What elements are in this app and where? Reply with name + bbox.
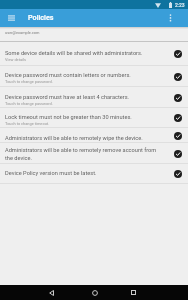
button[interactable]: Some device details will be shared with … bbox=[0, 42, 188, 66]
button[interactable]: Lock timeout must not be greater than 30… bbox=[0, 108, 188, 128]
button[interactable]: Administrators will be able to remotely … bbox=[0, 128, 188, 143]
staticText: Touch to change password. bbox=[5, 101, 53, 106]
staticText: Administrators will be able to remotely … bbox=[5, 135, 143, 142]
staticText: Administrators will be able to remotely … bbox=[5, 147, 157, 161]
staticText: Touch to change password. bbox=[5, 79, 53, 84]
staticText: user@example.com bbox=[5, 30, 40, 35]
button[interactable]: Device Policy version must be latest. bbox=[0, 164, 188, 184]
staticText: Some device details will be shared with … bbox=[5, 50, 143, 57]
button[interactable]: Administrators will be able to remotely … bbox=[0, 143, 188, 164]
button[interactable] bbox=[164, 12, 176, 24]
staticText: 2:23 bbox=[175, 2, 185, 8]
button[interactable]: Device password must contain letters or … bbox=[0, 66, 188, 87]
button[interactable] bbox=[88, 286, 101, 299]
staticText: Touch to change timeout. bbox=[5, 121, 50, 126]
staticText: View details bbox=[5, 57, 26, 62]
staticText: Device Policy version must be latest. bbox=[5, 170, 97, 177]
button[interactable]: Device password must have at least 4 cha… bbox=[0, 87, 188, 108]
staticText: Lock timeout must not be greater than 30… bbox=[5, 114, 132, 121]
button[interactable]: user@example.com bbox=[0, 27, 188, 42]
staticText: Device password must have at least 4 cha… bbox=[5, 94, 130, 101]
button[interactable] bbox=[45, 286, 58, 299]
button[interactable] bbox=[4, 10, 19, 25]
staticText: Device password must contain letters or … bbox=[5, 72, 131, 79]
staticText: Policies bbox=[28, 13, 54, 21]
button[interactable] bbox=[127, 286, 140, 299]
